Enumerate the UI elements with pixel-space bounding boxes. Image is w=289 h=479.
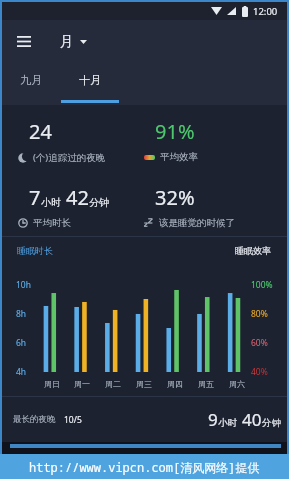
staticText: 91% xyxy=(155,118,195,145)
staticText: 9 xyxy=(208,408,218,431)
button[interactable]: 32% xyxy=(144,170,287,236)
button[interactable]: 九月 xyxy=(2,63,60,105)
staticText: 12:00 xyxy=(253,5,278,18)
staticText: 周五 xyxy=(198,379,214,389)
button[interactable]: 最长的夜晚 xyxy=(2,397,287,442)
staticText: 4h xyxy=(16,366,27,378)
staticText: 小时 xyxy=(41,196,61,209)
staticText: 周六 xyxy=(229,379,245,389)
staticText: 40 xyxy=(242,408,262,431)
staticText: 40% xyxy=(251,366,268,378)
button[interactable]: Menu xyxy=(2,20,46,63)
staticText: 睡眠时长 xyxy=(17,245,53,256)
staticText: 九月 xyxy=(20,73,42,87)
staticText: 周二 xyxy=(105,379,121,389)
staticText: 周三 xyxy=(136,379,152,389)
button[interactable]: 24 xyxy=(2,105,144,170)
button[interactable]: 十月 xyxy=(60,63,120,105)
staticText: 42 xyxy=(66,184,89,211)
staticText: 60% xyxy=(251,337,268,349)
staticText: 8h xyxy=(16,308,27,320)
button[interactable]: 7 xyxy=(2,170,144,236)
staticText: 小时 xyxy=(218,417,237,429)
staticText: 32% xyxy=(155,184,195,211)
staticText: 平均效率 xyxy=(160,151,198,163)
staticText: 周日 xyxy=(44,379,60,389)
staticText: 100% xyxy=(251,279,273,291)
staticText: 十月 xyxy=(79,73,101,87)
staticText: 80% xyxy=(251,308,268,320)
staticText: 10h xyxy=(16,279,31,291)
staticText: http://www.vipcn.com[清风网络]提供 xyxy=(29,459,260,475)
staticText: 月 xyxy=(60,33,74,50)
staticText: 最长的夜晚 xyxy=(13,414,56,425)
staticText: 周四 xyxy=(167,379,183,389)
staticText: 6h xyxy=(16,337,27,349)
staticText: 24 xyxy=(29,118,52,145)
staticText: 分钟 xyxy=(89,196,109,209)
staticText: 平均时长 xyxy=(33,217,71,229)
staticText: 10/5 xyxy=(64,414,82,426)
staticText: (个)追踪过的夜晚 xyxy=(33,151,106,164)
button[interactable]: 月 xyxy=(58,20,89,63)
button[interactable]: 91% xyxy=(144,105,287,170)
staticText: 分钟 xyxy=(262,417,281,429)
staticText: 7 xyxy=(29,184,41,211)
staticText: 睡眠效率 xyxy=(235,245,271,256)
staticText: 周一 xyxy=(74,379,90,389)
staticText: 该是睡觉的时候了 xyxy=(159,217,235,229)
